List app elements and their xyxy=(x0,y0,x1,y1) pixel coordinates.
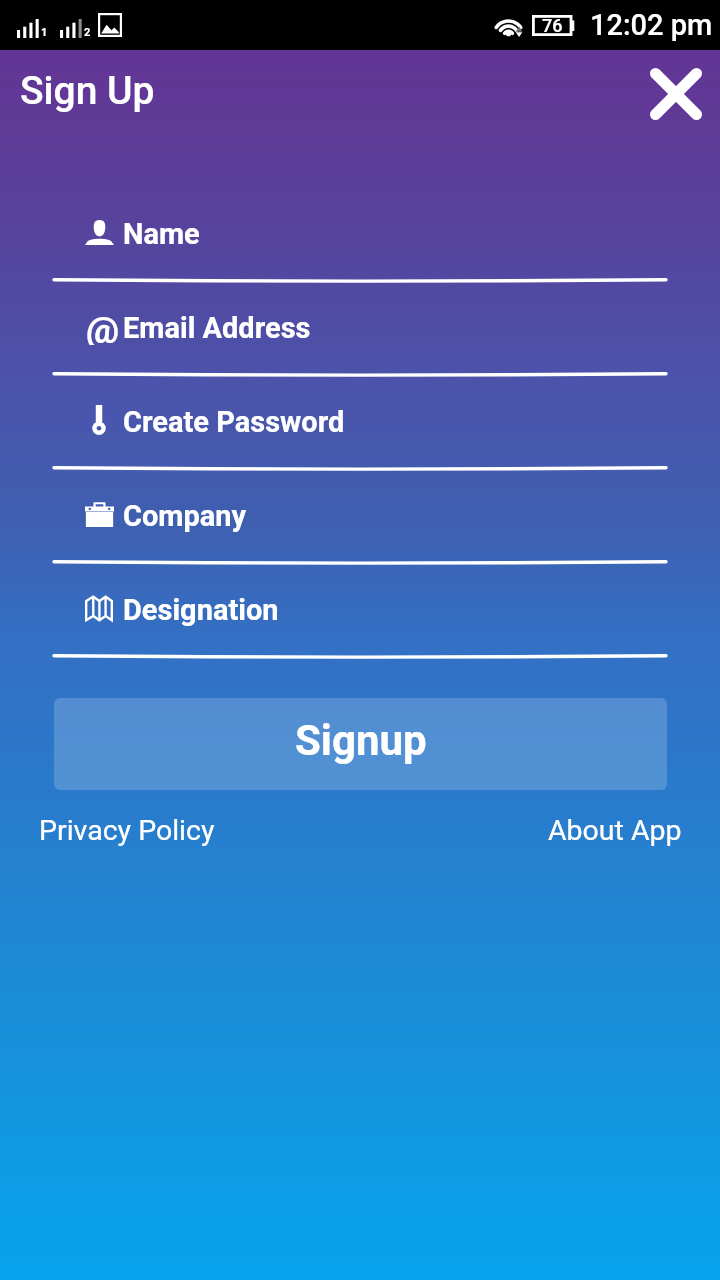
staticText: 12:02 pm xyxy=(590,8,713,42)
staticText: Create Password xyxy=(123,405,345,439)
staticText: Sign Up xyxy=(20,68,155,114)
button[interactable]: About App xyxy=(548,814,682,847)
button[interactable]: Name xyxy=(0,208,720,302)
staticText: Designation xyxy=(123,593,279,627)
staticText: 2 xyxy=(84,26,91,39)
button[interactable]: Designation xyxy=(0,584,720,678)
staticText: Company xyxy=(123,499,247,533)
button[interactable]: @ xyxy=(0,302,720,396)
button[interactable]: Company xyxy=(0,490,720,584)
button[interactable]: Create Password xyxy=(0,396,720,490)
staticText: About App xyxy=(548,814,682,847)
staticText: 76 xyxy=(542,15,563,36)
staticText: 1 xyxy=(41,26,48,39)
button[interactable]: Privacy Policy xyxy=(39,814,215,847)
button[interactable]: Signup xyxy=(54,698,667,790)
staticText: Name xyxy=(123,217,200,251)
staticText: Email Address xyxy=(123,311,311,345)
staticText: @ xyxy=(86,309,120,345)
button[interactable]: Close xyxy=(643,61,708,126)
staticText: Signup xyxy=(295,716,427,765)
staticText: Privacy Policy xyxy=(39,814,215,847)
